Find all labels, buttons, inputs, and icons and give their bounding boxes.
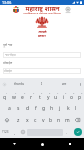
staticText: i: [63, 94, 65, 101]
staticText: 6: [49, 92, 51, 95]
button[interactable]: ?123: [0, 126, 11, 138]
staticText: b: [49, 117, 53, 124]
staticText: m: [65, 117, 70, 124]
button[interactable]: x: [23, 114, 31, 126]
button[interactable]: नाव नोंदवा: [3, 52, 81, 58]
button[interactable]: 4: [27, 90, 36, 102]
staticText: नाव नोंदवा: [5, 53, 16, 57]
staticText: I: [41, 82, 43, 86]
button[interactable]: h: [48, 102, 56, 114]
button[interactable]: ,: [11, 126, 19, 138]
button[interactable]: s: [14, 102, 23, 114]
button[interactable]: m: [63, 114, 71, 126]
staticText: महाराष्ट्र शासन: [25, 4, 60, 12]
button[interactable]: Shift: [0, 114, 14, 126]
staticText: e: [21, 94, 24, 101]
staticText: x: [26, 117, 29, 124]
staticText: 5: [41, 92, 43, 95]
staticText: c: [34, 117, 37, 124]
staticText: 13:06: [2, 0, 12, 5]
staticText: n: [57, 117, 61, 124]
button[interactable]: we: [53, 78, 76, 90]
button[interactable]: Hide keyboard: [0, 138, 28, 150]
staticText: p: [78, 94, 82, 101]
staticText: मोबाईल: [4, 69, 12, 73]
button[interactable]: मोबाईल: [3, 68, 81, 74]
button[interactable]: 7: [52, 90, 60, 102]
button[interactable]: Recent apps: [56, 138, 84, 150]
staticText: w: [12, 94, 16, 101]
staticText: v: [42, 117, 45, 124]
button[interactable]: n: [55, 114, 63, 126]
button[interactable]: Backspace: [71, 114, 84, 126]
staticText: j: [59, 105, 61, 112]
staticText: पूर्ण नाव: [3, 43, 13, 47]
button[interactable]: More options: [76, 78, 84, 90]
button[interactable]: a: [5, 102, 14, 114]
staticText: k: [67, 105, 70, 112]
staticText: a: [8, 105, 11, 112]
button[interactable]: 2: [9, 90, 18, 102]
staticText: z: [17, 117, 20, 124]
staticText: 4: [33, 92, 35, 95]
staticText: 7: [57, 92, 59, 95]
staticText: r: [30, 94, 33, 101]
staticText: q: [3, 94, 7, 101]
staticText: .: [66, 130, 68, 135]
button[interactable]: 0: [76, 90, 84, 102]
button[interactable]: 5: [36, 90, 44, 102]
button[interactable]: 9: [68, 90, 76, 102]
staticText: 9: [73, 92, 75, 95]
staticText: 8: [65, 92, 67, 95]
staticText: 2: [15, 92, 17, 95]
button[interactable]: 3: [18, 90, 27, 102]
staticText: f: [35, 105, 37, 112]
button[interactable]: b: [47, 114, 55, 126]
staticText: सरकार: [38, 34, 46, 38]
staticText: h: [50, 105, 54, 112]
button[interactable]: thanks: [8, 78, 30, 90]
staticText: t: [39, 94, 41, 101]
button[interactable]: d: [23, 102, 32, 114]
button[interactable]: Done: [71, 126, 84, 138]
staticText: y: [47, 94, 50, 101]
staticText: 0: [81, 92, 83, 95]
button[interactable]: 1: [0, 90, 9, 102]
staticText: ग्रामविकास व पंचायत राज विभाग: [23, 12, 61, 14]
button[interactable]: Emoji: [19, 126, 27, 138]
staticText: g: [42, 105, 46, 112]
button[interactable]: k: [64, 102, 72, 114]
staticText: आपले: [38, 29, 47, 34]
staticText: u: [54, 94, 58, 101]
button[interactable]: f: [32, 102, 40, 114]
staticText: ,: [14, 130, 16, 135]
staticText: मोबाईल: [3, 61, 13, 65]
staticText: thanks: [14, 82, 25, 86]
button[interactable]: g: [40, 102, 48, 114]
button[interactable]: I: [30, 78, 53, 90]
button[interactable]: Expand toolbar: [0, 78, 8, 90]
button[interactable]: [27, 126, 63, 138]
button[interactable]: 6: [44, 90, 52, 102]
staticText: o: [70, 94, 74, 101]
staticText: s: [17, 105, 20, 112]
button[interactable]: j: [56, 102, 64, 114]
button[interactable]: 8: [60, 90, 68, 102]
button[interactable]: z: [14, 114, 23, 126]
staticText: 1: [6, 92, 8, 95]
staticText: 3: [24, 92, 26, 95]
staticText: ?123: [2, 130, 9, 134]
button[interactable]: Home: [28, 138, 56, 150]
button[interactable]: v: [39, 114, 47, 126]
button[interactable]: c: [31, 114, 39, 126]
staticText: we: [62, 82, 67, 86]
button[interactable]: l: [72, 102, 80, 114]
staticText: l: [75, 105, 77, 112]
staticText: d: [26, 105, 30, 112]
